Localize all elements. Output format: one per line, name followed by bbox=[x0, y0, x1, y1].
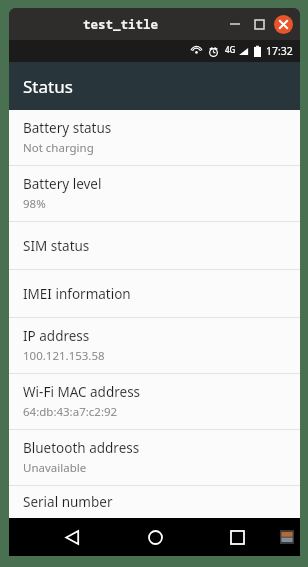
staticText: Bluetooth address bbox=[23, 439, 140, 457]
staticText: 4G bbox=[225, 44, 236, 55]
staticText: IP address bbox=[23, 327, 90, 345]
staticText: 17:32 bbox=[266, 44, 293, 58]
staticText: Serial number bbox=[23, 493, 113, 511]
staticText: Battery level bbox=[23, 175, 102, 193]
staticText: test_title bbox=[83, 16, 159, 33]
button[interactable]: Input method bbox=[280, 530, 294, 544]
button[interactable]: Bluetooth address bbox=[9, 430, 300, 485]
button[interactable]: IMEI information bbox=[9, 270, 300, 317]
button[interactable]: Battery status bbox=[9, 110, 300, 165]
button[interactable]: IP address bbox=[9, 318, 300, 373]
staticText: Not charging bbox=[23, 140, 94, 156]
staticText: Unavailable bbox=[23, 460, 87, 476]
staticText: 100.121.153.58 bbox=[23, 348, 105, 364]
staticText: Wi-Fi MAC address bbox=[23, 383, 141, 401]
button[interactable]: Battery level bbox=[9, 166, 300, 221]
staticText: 64:db:43:a7:c2:92 bbox=[23, 404, 118, 420]
button[interactable]: Back bbox=[53, 518, 91, 556]
button[interactable]: Minimize bbox=[223, 12, 247, 36]
button[interactable]: Serial number bbox=[9, 486, 300, 518]
button[interactable]: SIM status bbox=[9, 222, 300, 269]
button[interactable]: Close bbox=[271, 12, 295, 36]
button[interactable]: Wi-Fi MAC address bbox=[9, 374, 300, 429]
button[interactable]: Maximize bbox=[247, 12, 271, 36]
staticText: SIM status bbox=[23, 237, 90, 255]
staticText: IMEI information bbox=[23, 285, 131, 303]
staticText: Battery status bbox=[23, 119, 112, 137]
button[interactable]: Recent apps bbox=[218, 518, 256, 556]
staticText: Status bbox=[23, 75, 73, 98]
staticText: 98% bbox=[23, 196, 46, 212]
button[interactable]: Home bbox=[136, 518, 174, 556]
